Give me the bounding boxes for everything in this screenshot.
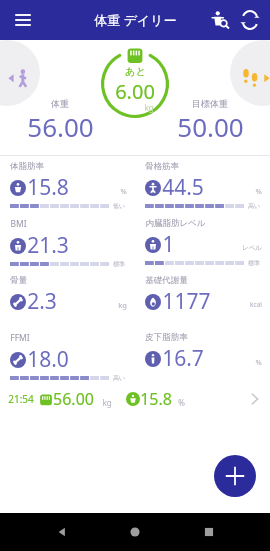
staticText: あと <box>125 65 146 78</box>
button[interactable]: 21:54 <box>0 384 270 414</box>
button[interactable]: 骨格筋率 <box>135 156 270 213</box>
button[interactable]: Menu <box>8 5 38 35</box>
staticText: 1 <box>162 230 175 259</box>
staticText: 44.5 <box>162 173 204 202</box>
button[interactable]: 体重 <box>10 98 110 144</box>
staticText: 標準 <box>246 259 262 267</box>
button[interactable]: FFMI <box>0 327 135 384</box>
staticText: 低い <box>111 202 127 210</box>
button[interactable]: 体脂肪率 <box>0 156 135 213</box>
other: More <box>244 388 266 410</box>
button[interactable]: Sync <box>236 6 264 34</box>
staticText: 骨量 <box>10 275 27 286</box>
staticText: 2.3 <box>27 287 57 316</box>
staticText: 体重 <box>51 98 69 109</box>
staticText: 6.00 <box>115 78 155 105</box>
staticText: 50.00 <box>177 109 244 144</box>
staticText: FFMI <box>10 332 30 344</box>
staticText: kg <box>118 300 127 310</box>
staticText: 15.8 <box>140 388 172 410</box>
staticText: 体重 デイリー <box>94 11 177 29</box>
staticText: 21:54 <box>8 392 34 406</box>
staticText: 目標体重 <box>192 98 228 109</box>
button[interactable]: BMI <box>0 213 135 270</box>
staticText: 骨格筋率 <box>145 161 179 172</box>
staticText: 56.00 <box>53 388 94 410</box>
button[interactable]: 皮下脂肪率 <box>135 327 270 384</box>
staticText: BMI <box>10 218 27 230</box>
button[interactable]: Add record <box>214 455 256 497</box>
button[interactable]: 内臓脂肪レベル <box>135 213 270 270</box>
button[interactable]: 基礎代謝量 <box>135 270 270 327</box>
staticText: 基礎代謝量 <box>145 275 188 286</box>
staticText: % <box>120 186 127 196</box>
staticText: 皮下脂肪率 <box>145 332 188 343</box>
staticText: 16.7 <box>162 344 204 373</box>
staticText: 18.0 <box>27 345 69 374</box>
button[interactable]: Body search <box>206 6 234 34</box>
staticText: 標準 <box>111 260 127 267</box>
staticText: kg <box>102 397 112 408</box>
staticText: kcal <box>250 300 262 309</box>
staticText: 体脂肪率 <box>10 161 44 172</box>
button[interactable]: 目標体重 <box>160 98 260 144</box>
staticText: 高い <box>111 374 127 381</box>
button[interactable]: Previous: steps <box>0 40 40 106</box>
staticText: レベル <box>242 244 262 252</box>
staticText: % <box>255 357 262 367</box>
staticText: % <box>178 397 185 408</box>
staticText: 1177 <box>162 287 211 316</box>
staticText: kg <box>144 102 154 113</box>
staticText: 56.00 <box>27 109 94 144</box>
button[interactable]: Back <box>50 520 74 544</box>
staticText: 内臓脂肪レベル <box>145 218 206 229</box>
button[interactable]: Next: footsteps <box>230 40 270 106</box>
button[interactable]: Recents <box>197 520 221 544</box>
staticText: 21.3 <box>27 231 69 260</box>
staticText: 高い <box>246 202 262 210</box>
button[interactable]: 骨量 <box>0 270 135 327</box>
staticText: 15.8 <box>27 173 69 202</box>
button[interactable]: Home <box>123 520 147 544</box>
staticText: % <box>255 186 262 196</box>
